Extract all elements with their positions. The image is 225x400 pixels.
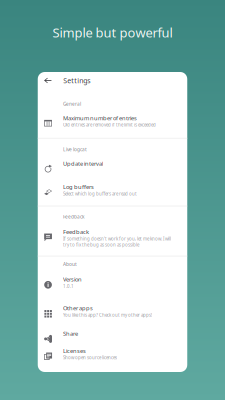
staticText: Feedback (63, 213, 85, 220)
staticText: If something doesn't work for you, let m… (63, 236, 171, 248)
staticText: Settings (63, 76, 90, 85)
staticText: Other apps (63, 304, 93, 312)
staticText: Feedback (63, 228, 89, 236)
button[interactable]: Share (38, 318, 187, 343)
button[interactable]: Other apps (38, 289, 187, 318)
button[interactable]: Update interval (38, 153, 187, 173)
staticText: Select which log buffers are read out (63, 191, 137, 197)
staticText: Show open source licences (63, 355, 117, 361)
staticText: Licenses (63, 347, 86, 355)
staticText: 1.0.1 (63, 283, 74, 289)
button[interactable]: Back (40, 72, 56, 88)
staticText: Live logcat (63, 146, 87, 152)
button[interactable]: Maximum number of entries (38, 107, 187, 128)
staticText: Share (63, 329, 78, 337)
staticText: Update interval (63, 160, 103, 167)
staticText: Simple but powerful (52, 24, 172, 41)
staticText: Log buffers (63, 183, 94, 191)
staticText: About (63, 261, 77, 267)
staticText: Old entries are removed if the limit is … (63, 122, 156, 128)
staticText: You like this app? Check out my other ap… (63, 312, 152, 318)
button[interactable]: Licenses (38, 343, 187, 361)
button[interactable]: Log buffers (38, 173, 187, 197)
staticText: Version (63, 275, 82, 283)
staticText: Maximum number of entries (63, 114, 137, 122)
button[interactable]: Version (38, 267, 187, 289)
staticText: General (63, 100, 81, 107)
button[interactable]: Feedback (38, 220, 187, 248)
